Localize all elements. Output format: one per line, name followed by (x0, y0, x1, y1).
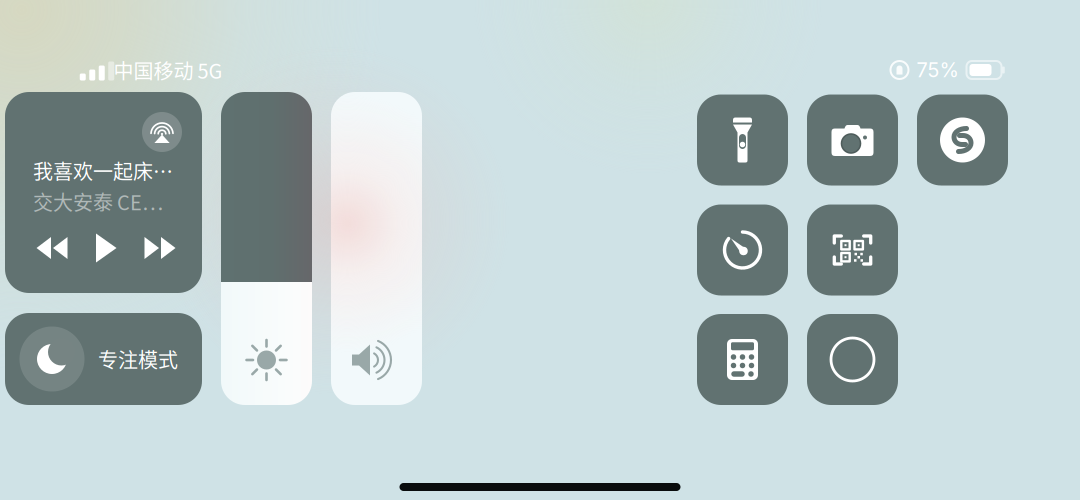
button[interactable]: Flashlight (697, 94, 788, 185)
button[interactable]: Calculator (697, 314, 788, 405)
button[interactable]: Volume (331, 92, 422, 405)
staticText: 交大安泰 CE… (33, 187, 163, 216)
button[interactable]: Timer (697, 204, 788, 295)
staticText: 专注模式 (98, 344, 178, 373)
staticText: 75% (916, 58, 958, 82)
button[interactable]: Screen Recording (807, 314, 898, 405)
staticText: 我喜欢一起床… (33, 156, 173, 185)
button[interactable]: 专注模式 (5, 313, 202, 405)
staticText: 中国移动 5G (113, 55, 222, 84)
button[interactable]: Camera (807, 94, 898, 185)
button[interactable]: Code Scanner (807, 204, 898, 295)
button[interactable]: Brightness (221, 92, 312, 405)
button[interactable]: 我喜欢一起床… (5, 92, 202, 293)
button[interactable]: Shazam (917, 94, 1008, 185)
